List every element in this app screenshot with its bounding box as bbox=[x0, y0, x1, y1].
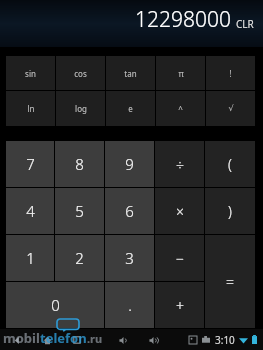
staticText: 3:10 bbox=[215, 333, 235, 347]
button[interactable]: Recent apps bbox=[66, 331, 88, 349]
staticText: 1 bbox=[26, 248, 35, 268]
button[interactable]: 9 bbox=[105, 141, 154, 187]
button[interactable]: 5 bbox=[55, 188, 104, 234]
button[interactable]: cos bbox=[56, 56, 105, 90]
staticText: 0 bbox=[51, 295, 60, 315]
button[interactable]: 1 bbox=[6, 235, 54, 281]
button[interactable]: − bbox=[155, 235, 204, 281]
staticText: e bbox=[128, 103, 133, 114]
button[interactable]: log bbox=[56, 91, 105, 126]
button[interactable]: 3 bbox=[105, 235, 154, 281]
staticText: = bbox=[226, 272, 234, 291]
staticText: ! bbox=[229, 68, 232, 79]
button[interactable]: sin bbox=[6, 56, 55, 90]
staticText: 5 bbox=[75, 201, 84, 221]
staticText: + bbox=[176, 296, 184, 315]
staticText: cos bbox=[74, 68, 87, 79]
staticText: 6 bbox=[125, 201, 134, 221]
staticText: ÷ bbox=[176, 155, 184, 174]
button[interactable]: 7 bbox=[6, 141, 54, 187]
button[interactable]: 0 bbox=[6, 282, 104, 328]
staticText: mobil bbox=[3, 329, 40, 347]
staticText: 4 bbox=[26, 201, 35, 221]
button[interactable]: 4 bbox=[6, 188, 54, 234]
button[interactable]: = bbox=[205, 235, 255, 328]
button[interactable]: tan bbox=[106, 56, 155, 90]
staticText: 12298000 bbox=[135, 5, 231, 34]
button[interactable]: ! bbox=[206, 56, 255, 90]
staticText: telefon bbox=[40, 329, 87, 347]
staticText: 9 bbox=[125, 154, 134, 174]
staticText: ) bbox=[228, 202, 232, 221]
button[interactable]: 8 bbox=[55, 141, 104, 187]
staticText: ln bbox=[27, 103, 35, 114]
staticText: tan bbox=[124, 68, 137, 79]
staticText: . bbox=[128, 295, 132, 315]
button[interactable]: + bbox=[155, 282, 204, 328]
staticText: − bbox=[176, 249, 184, 268]
staticText: 8 bbox=[75, 154, 84, 174]
staticText: 2 bbox=[75, 248, 84, 268]
staticText: × bbox=[176, 202, 184, 221]
button[interactable]: . bbox=[105, 282, 154, 328]
button[interactable]: 12298000 bbox=[0, 0, 263, 47]
button[interactable]: Back bbox=[6, 331, 28, 349]
staticText: 7 bbox=[26, 154, 35, 174]
staticText: π bbox=[178, 68, 184, 79]
button[interactable]: Home bbox=[36, 331, 58, 349]
button[interactable]: × bbox=[155, 188, 204, 234]
staticText: .ru bbox=[87, 331, 103, 346]
staticText: 3 bbox=[125, 248, 134, 268]
staticText: ( bbox=[228, 155, 232, 174]
button[interactable]: CLR bbox=[236, 17, 254, 31]
button[interactable]: 6 bbox=[105, 188, 154, 234]
button[interactable]: ) bbox=[205, 188, 255, 234]
button[interactable]: Volume up bbox=[143, 331, 163, 349]
button[interactable]: π bbox=[156, 56, 205, 90]
button[interactable]: √ bbox=[206, 91, 255, 126]
staticText: CLR bbox=[236, 17, 254, 31]
staticText: ^ bbox=[178, 103, 183, 114]
staticText: sin bbox=[25, 68, 36, 79]
button[interactable]: Volume down bbox=[113, 331, 133, 349]
button[interactable]: e bbox=[106, 91, 155, 126]
button[interactable]: ( bbox=[205, 141, 255, 187]
button[interactable]: 2 bbox=[55, 235, 104, 281]
button[interactable]: ln bbox=[6, 91, 55, 126]
staticText: √ bbox=[228, 104, 234, 113]
button[interactable]: ÷ bbox=[155, 141, 204, 187]
button[interactable]: ^ bbox=[156, 91, 205, 126]
staticText: log bbox=[75, 103, 87, 114]
